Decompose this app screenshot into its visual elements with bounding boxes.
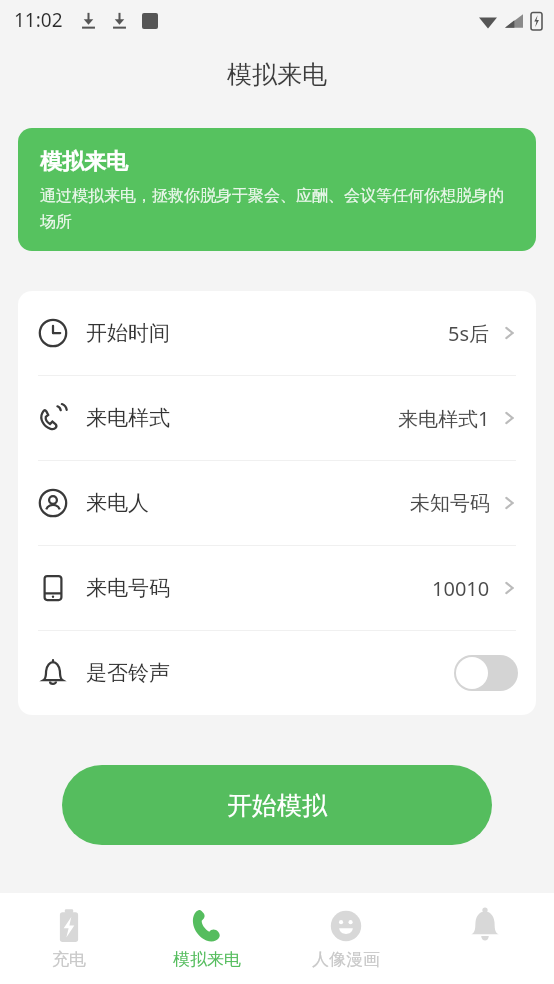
staticText: 模拟来电 bbox=[173, 949, 241, 970]
staticText: 来电号码 bbox=[86, 575, 170, 601]
button[interactable]: 开始时间 bbox=[18, 291, 536, 375]
staticText: 来电样式1 bbox=[398, 405, 490, 432]
button[interactable]: 是否铃声 bbox=[18, 631, 536, 715]
button[interactable]: 充电 bbox=[0, 893, 138, 984]
staticText: 5s后 bbox=[448, 320, 490, 347]
staticText: 11:02 bbox=[14, 7, 63, 33]
button[interactable]: Toggle ringtone bbox=[454, 655, 518, 691]
button[interactable]: 来电号码 bbox=[18, 546, 536, 630]
staticText: 来电人 bbox=[86, 490, 149, 516]
button[interactable]: Notifications bbox=[415, 893, 554, 984]
staticText: 10010 bbox=[432, 575, 490, 602]
staticText: 通过模拟来电，拯救你脱身于聚会、应酬、会议等任何你想脱身的场所 bbox=[40, 186, 514, 231]
button[interactable]: 模拟来电 bbox=[18, 128, 536, 251]
staticText: 开始模拟 bbox=[227, 790, 327, 821]
staticText: 模拟来电 bbox=[227, 59, 327, 90]
staticText: 开始时间 bbox=[86, 320, 170, 346]
button[interactable]: 来电样式 bbox=[18, 376, 536, 460]
staticText: 来电样式 bbox=[86, 405, 170, 431]
staticText: 人像漫画 bbox=[312, 949, 380, 970]
staticText: 是否铃声 bbox=[86, 660, 170, 686]
button[interactable]: 人像漫画 bbox=[276, 893, 415, 984]
staticText: 充电 bbox=[52, 949, 86, 970]
staticText: 未知号码 bbox=[410, 491, 490, 516]
staticText: 模拟来电 bbox=[40, 148, 128, 176]
button[interactable]: 模拟来电 bbox=[138, 893, 276, 984]
button[interactable]: 开始模拟 bbox=[62, 765, 492, 845]
button[interactable]: 来电人 bbox=[18, 461, 536, 545]
